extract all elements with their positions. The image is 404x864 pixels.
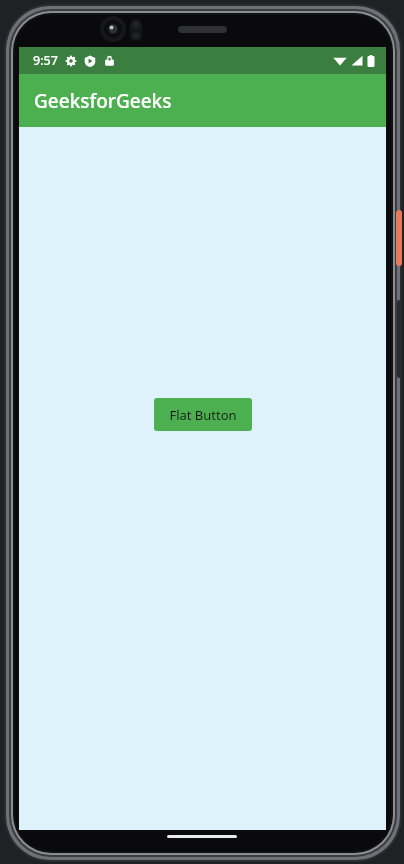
staticText: Flat Button [169,406,237,424]
staticText: GeeksforGeeks [34,88,172,114]
staticText: 9:57 [33,52,58,69]
button[interactable]: Flat Button [154,398,252,431]
